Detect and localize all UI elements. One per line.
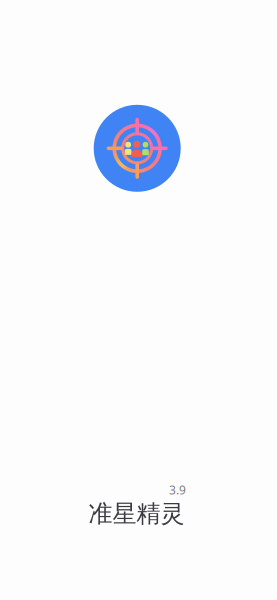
staticText: 准星精灵 — [88, 499, 184, 528]
staticText: 3.9 — [169, 482, 186, 498]
